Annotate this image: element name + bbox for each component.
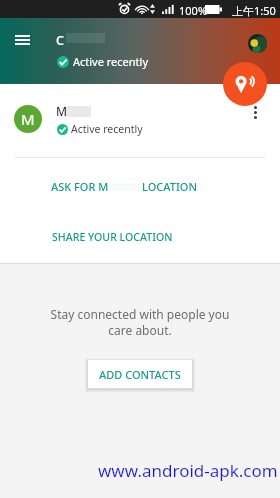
staticText: C [56, 32, 64, 49]
button[interactable] [0, 84, 280, 146]
staticText: Active recently [73, 54, 148, 69]
staticText: www.android-apk.com [98, 459, 278, 482]
staticText: M [21, 109, 35, 129]
staticText: M [56, 103, 68, 119]
staticText: ASK FOR M [51, 179, 109, 194]
button[interactable]: Share live location [223, 62, 267, 106]
button[interactable]: ADD CONTACTS [88, 360, 192, 388]
button[interactable]: More options [245, 102, 265, 122]
staticText: 上午1:50 [232, 3, 276, 18]
staticText: 100% [179, 3, 208, 18]
staticText: ADD CONTACTS [99, 367, 181, 382]
button[interactable] [0, 216, 280, 258]
staticText: LOCATION [142, 179, 197, 194]
staticText: SHARE YOUR LOCATION [52, 230, 173, 244]
button[interactable]: Profile [248, 34, 267, 53]
staticText: Active recently [71, 122, 143, 136]
button[interactable]: Menu [6, 26, 38, 54]
button[interactable] [0, 166, 280, 208]
staticText: Stay connected with people you care abou… [0, 306, 280, 338]
